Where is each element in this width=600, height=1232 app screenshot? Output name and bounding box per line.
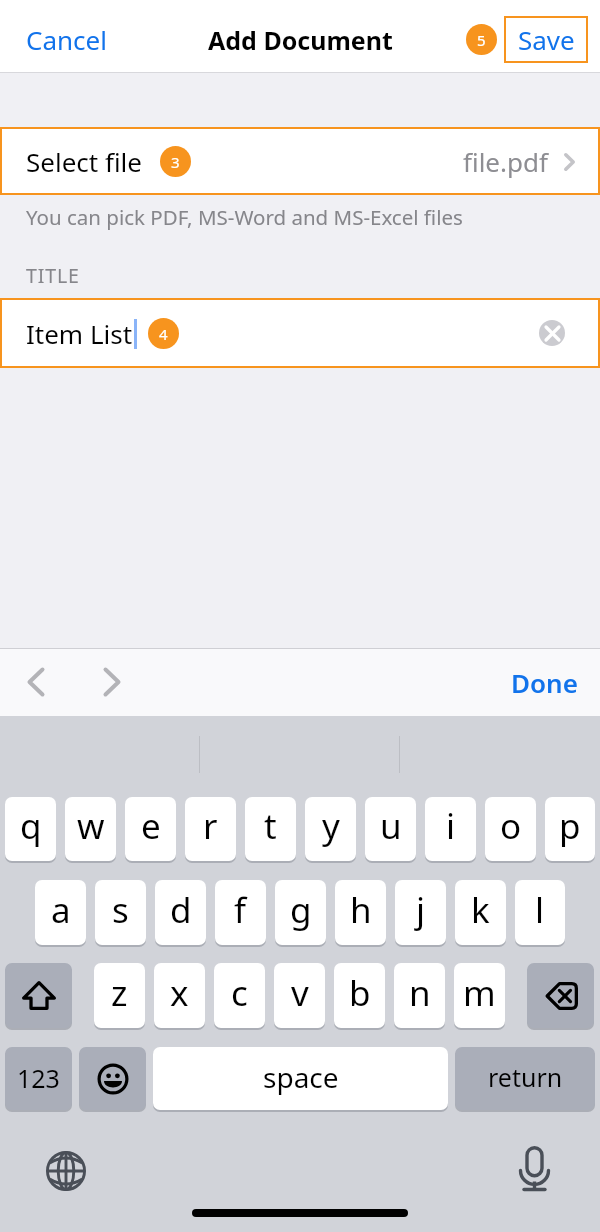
staticText: b	[349, 969, 371, 1017]
button[interactable]: Cancel	[26, 22, 107, 57]
staticText: h	[350, 886, 372, 934]
staticText: TITLE	[26, 262, 80, 289]
button[interactable]: g	[275, 880, 326, 947]
button[interactable]: return	[455, 1047, 595, 1112]
button[interactable]: Change keyboard	[42, 1147, 90, 1195]
staticText: t	[264, 802, 277, 850]
staticText: q	[20, 802, 42, 850]
button[interactable]: Backspace	[527, 963, 594, 1030]
button[interactable]: x	[154, 963, 205, 1030]
button[interactable]: h	[335, 880, 386, 947]
button[interactable]: w	[65, 797, 116, 863]
button[interactable]: l	[515, 880, 565, 947]
button[interactable]: Clear text	[539, 320, 565, 346]
staticText: s	[112, 886, 129, 934]
staticText: n	[409, 969, 431, 1017]
staticText: Select file	[26, 144, 142, 179]
button[interactable]: 123	[5, 1047, 72, 1112]
staticText: Done	[511, 665, 578, 700]
staticText: space	[263, 1058, 339, 1096]
button[interactable]: i	[425, 797, 476, 863]
button[interactable]: p	[545, 797, 595, 863]
button[interactable]: k	[455, 880, 506, 947]
button[interactable]: d	[155, 880, 206, 947]
staticText: l	[535, 886, 545, 934]
staticText: k	[471, 886, 490, 934]
staticText: r	[203, 802, 218, 850]
staticText: Save	[518, 22, 575, 57]
staticText: d	[170, 886, 192, 934]
staticText: 3	[171, 152, 180, 172]
button[interactable]: r	[185, 797, 236, 863]
button[interactable]: Emoji	[79, 1047, 146, 1112]
button[interactable]: c	[214, 963, 265, 1030]
button[interactable]: Next field	[92, 662, 132, 702]
staticText: return	[488, 1060, 563, 1094]
button[interactable]: b	[334, 963, 385, 1030]
staticText: f	[234, 886, 247, 934]
staticText: y	[322, 802, 340, 850]
staticText: j	[416, 886, 426, 934]
button[interactable]: e	[125, 797, 176, 863]
button[interactable]: f	[215, 880, 266, 947]
staticText: Add Document	[208, 23, 393, 57]
button[interactable]: o	[485, 797, 536, 863]
button[interactable]: t	[245, 797, 296, 863]
staticText: e	[141, 802, 161, 850]
staticText: Item List	[26, 316, 133, 351]
button[interactable]: u	[365, 797, 416, 863]
staticText: file.pdf	[463, 144, 548, 179]
staticText: c	[231, 969, 248, 1017]
staticText: v	[291, 969, 309, 1017]
button[interactable]: j	[395, 880, 446, 947]
staticText: z	[111, 969, 128, 1017]
button[interactable]: n	[394, 963, 445, 1030]
staticText: x	[170, 969, 189, 1017]
button[interactable]: Shift	[5, 963, 72, 1030]
staticText: a	[51, 886, 71, 934]
staticText: p	[559, 802, 581, 850]
button[interactable]: Dictate	[520, 1146, 549, 1193]
button[interactable]: v	[274, 963, 325, 1030]
button[interactable]: q	[5, 797, 56, 863]
button[interactable]: m	[454, 963, 505, 1030]
staticText: 4	[159, 324, 168, 344]
button[interactable]: Previous field	[16, 662, 56, 702]
staticText: o	[500, 802, 522, 850]
staticText: i	[446, 802, 456, 850]
button[interactable]: z	[94, 963, 145, 1030]
button[interactable]: a	[35, 880, 86, 947]
staticText: 123	[17, 1061, 60, 1095]
button[interactable]: Save	[504, 16, 588, 63]
button[interactable]: Select file	[0, 127, 600, 195]
staticText: w	[77, 802, 105, 850]
staticText: You can pick PDF, MS-Word and MS-Excel f…	[26, 203, 463, 231]
staticText: 5	[477, 30, 486, 50]
staticText: u	[380, 802, 402, 850]
staticText: Cancel	[26, 22, 107, 57]
button[interactable]: Done	[511, 665, 578, 700]
button[interactable]: space	[153, 1047, 448, 1112]
staticText: g	[290, 886, 312, 934]
button[interactable]: s	[95, 880, 146, 947]
staticText: m	[463, 969, 496, 1017]
button[interactable]: y	[305, 797, 356, 863]
